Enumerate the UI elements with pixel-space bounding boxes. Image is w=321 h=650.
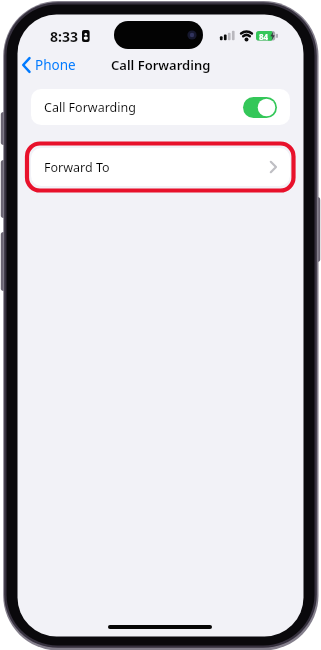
button[interactable]: Forward To xyxy=(31,148,290,186)
button[interactable]: Phone xyxy=(20,55,76,75)
staticText: Call Forwarding xyxy=(111,56,211,74)
staticText: 84 xyxy=(259,31,269,41)
staticText: 8:33 xyxy=(50,27,78,46)
staticText: Call Forwarding xyxy=(44,99,136,116)
staticText: Forward To xyxy=(44,159,110,176)
staticText: Phone xyxy=(35,56,76,74)
button[interactable]: Call Forwarding xyxy=(31,89,290,125)
